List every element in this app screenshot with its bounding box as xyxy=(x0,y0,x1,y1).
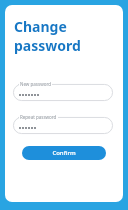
staticText: Repeat password xyxy=(20,114,57,120)
staticText: New password xyxy=(20,81,51,87)
button[interactable]: Confirm xyxy=(22,146,106,160)
button[interactable] xyxy=(13,84,113,101)
staticText: password xyxy=(14,36,81,55)
staticText: Confirm xyxy=(52,149,76,157)
button[interactable] xyxy=(13,117,113,134)
staticText: Change xyxy=(14,17,67,36)
